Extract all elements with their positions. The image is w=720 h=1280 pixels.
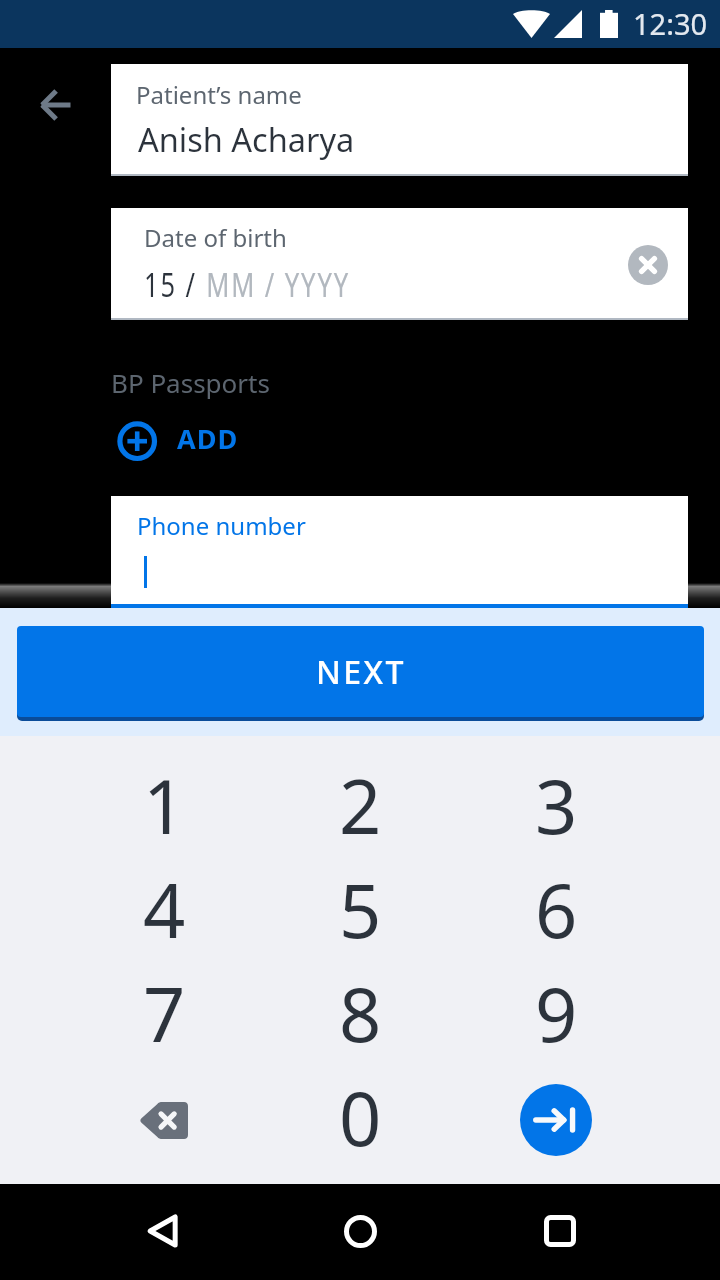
button[interactable]: 2 (300, 754, 420, 856)
button[interactable]: 9 (496, 962, 616, 1064)
staticText: 4 (143, 859, 186, 960)
button[interactable]: Home (324, 1195, 396, 1267)
staticText: 15 / (144, 263, 206, 307)
staticText: 2 (339, 755, 382, 856)
staticText: 3 (535, 755, 578, 856)
staticText: 12:30 (633, 4, 708, 43)
staticText: 1 (143, 755, 186, 856)
button[interactable]: 7 (104, 962, 224, 1064)
button[interactable]: Clear date of birth (628, 245, 668, 285)
button[interactable]: 3 (496, 754, 616, 856)
button[interactable]: 4 (104, 858, 224, 960)
button[interactable]: NEXT (17, 626, 704, 717)
button[interactable]: Back (124, 1195, 196, 1267)
button[interactable]: Next field (496, 1069, 616, 1171)
staticText: 8 (339, 963, 382, 1064)
button[interactable]: Backspace (104, 1069, 224, 1171)
button[interactable]: Recent apps (524, 1195, 596, 1267)
button[interactable]: Phone number (111, 496, 688, 608)
button[interactable]: 1 (104, 754, 224, 856)
button[interactable]: ADD (106, 410, 254, 470)
button[interactable]: 6 (496, 858, 616, 960)
staticText: 6 (535, 859, 578, 960)
button[interactable]: 5 (300, 858, 420, 960)
staticText: Phone number (137, 509, 306, 542)
staticText: 5 (339, 859, 382, 960)
staticText: ADD (177, 420, 239, 457)
staticText: 9 (535, 963, 578, 1064)
staticText: MM / YYYY (206, 263, 350, 307)
staticText: Anish Acharya (138, 117, 355, 161)
staticText: Patient’s name (136, 78, 302, 111)
staticText: 7 (143, 963, 186, 1064)
button[interactable]: 0 (300, 1066, 420, 1168)
staticText: BP Passports (111, 365, 270, 400)
button[interactable]: Date of birth (111, 208, 688, 320)
staticText: Date of birth (144, 221, 287, 254)
staticText: NEXT (316, 650, 406, 694)
staticText: 0 (339, 1067, 382, 1168)
button[interactable]: Patient’s name (111, 64, 688, 176)
button[interactable]: 8 (300, 962, 420, 1064)
button[interactable]: Back (23, 72, 89, 138)
